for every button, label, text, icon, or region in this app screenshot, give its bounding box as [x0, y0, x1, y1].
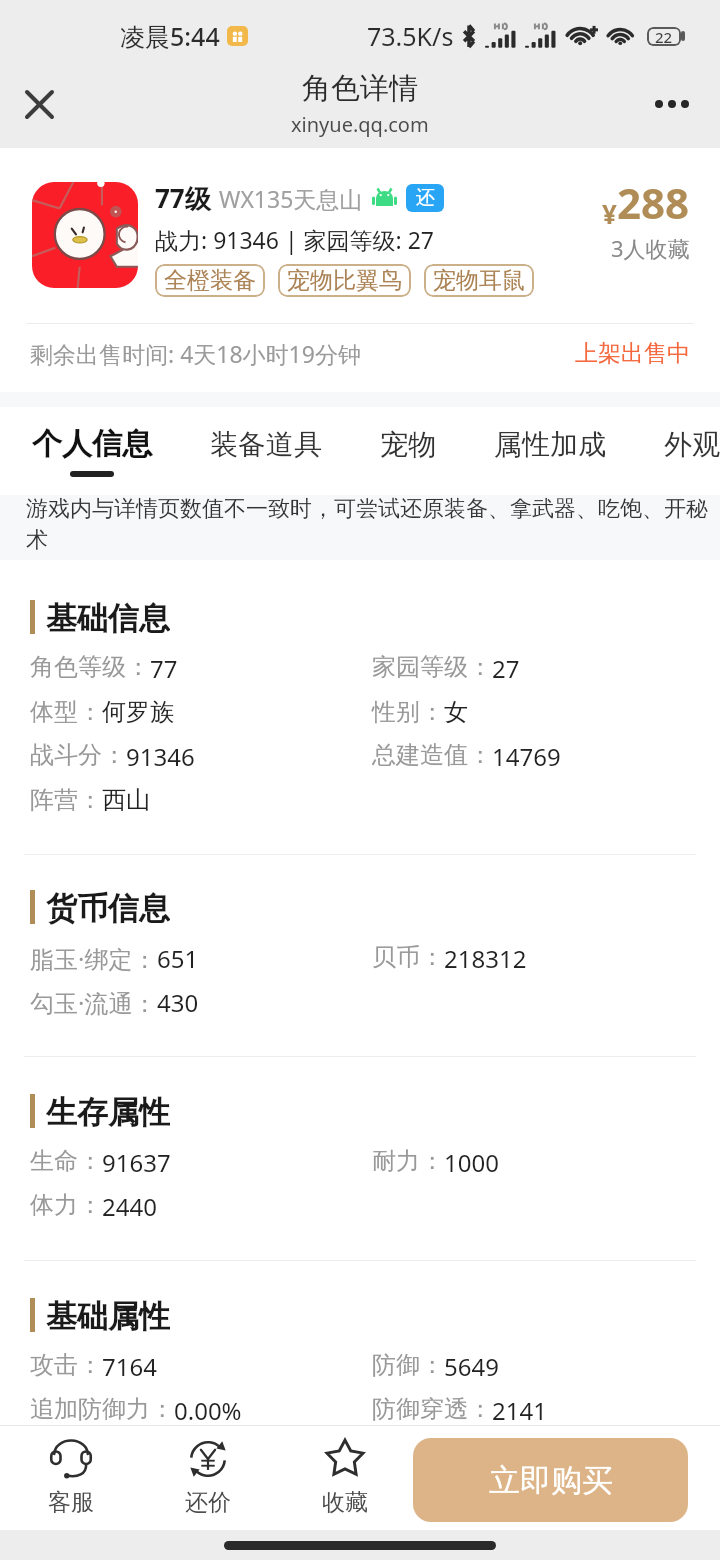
- button[interactable]: 装备道具: [210, 427, 322, 476]
- staticText: 角色等级：: [30, 652, 150, 682]
- button[interactable]: More options: [644, 76, 700, 132]
- staticText: 宠物比翼鸟: [287, 266, 402, 295]
- staticText: 还价: [185, 1488, 231, 1517]
- button[interactable]: 还价: [139, 1438, 276, 1517]
- staticText: 基础属性: [46, 1297, 170, 1333]
- staticText: 91637: [102, 1146, 171, 1179]
- staticText: 个人信息: [32, 425, 152, 463]
- button[interactable]: 立即购买: [413, 1438, 688, 1522]
- staticText: ¥: [602, 196, 617, 231]
- button[interactable]: 收藏: [276, 1438, 413, 1517]
- staticText: 贝币：: [372, 942, 444, 972]
- staticText: 2440: [102, 1190, 157, 1223]
- staticText: 凌晨5:44: [120, 19, 220, 53]
- staticText: 剩余出售时间: 4天18小时19分钟: [30, 338, 361, 369]
- staticText: 3人收藏: [611, 233, 690, 263]
- staticText: 全橙装备: [164, 266, 256, 295]
- button[interactable]: 宠物耳鼠: [433, 264, 525, 297]
- staticText: 14769: [492, 740, 561, 773]
- staticText: 总建造值：: [372, 740, 492, 770]
- staticText: 73.5K/s: [367, 19, 454, 53]
- staticText: 5649: [444, 1350, 499, 1383]
- staticText: 何罗族: [102, 697, 174, 727]
- staticText: 27: [492, 652, 520, 685]
- staticText: 攻击：: [30, 1350, 102, 1380]
- staticText: 288: [617, 174, 690, 231]
- staticText: 218312: [444, 942, 527, 975]
- staticText: 角色详情: [302, 70, 418, 107]
- staticText: 防御：: [372, 1350, 444, 1380]
- staticText: 西山: [102, 785, 150, 815]
- staticText: 体力：: [30, 1190, 102, 1220]
- staticText: 651: [157, 942, 199, 975]
- staticText: 77级: [155, 180, 211, 216]
- staticText: 战力: 91346 | 家园等级: 27: [155, 224, 435, 255]
- staticText: 生命：: [30, 1146, 102, 1176]
- staticText: 收藏: [322, 1488, 368, 1517]
- staticText: 外观: [664, 427, 720, 462]
- staticText: 脂玉·绑定：: [30, 942, 157, 975]
- staticText: 阵营：: [30, 785, 102, 815]
- staticText: 基础信息: [46, 599, 170, 635]
- button[interactable]: 全橙装备: [164, 264, 256, 297]
- staticText: 货币信息: [46, 889, 170, 925]
- staticText: 防御穿透：: [372, 1394, 492, 1424]
- staticText: 91346: [126, 740, 195, 773]
- staticText: xinyue.qq.com: [291, 111, 429, 138]
- staticText: 宠物耳鼠: [433, 266, 525, 295]
- button[interactable]: 宠物比翼鸟: [287, 264, 402, 297]
- staticText: 0.00%: [174, 1394, 242, 1427]
- button[interactable]: 属性加成: [494, 427, 606, 476]
- button[interactable]: 客服: [2, 1438, 139, 1517]
- staticText: 耐力：: [372, 1146, 444, 1176]
- staticText: 上架出售中: [575, 339, 690, 368]
- staticText: 1000: [444, 1146, 499, 1179]
- staticText: 家园等级：: [372, 652, 492, 682]
- staticText: 2141: [492, 1394, 547, 1427]
- staticText: 追加防御力：: [30, 1394, 174, 1424]
- staticText: 游戏内与详情页数值不一致时，可尝试还原装备、拿武器、吃饱、开秘术: [26, 495, 710, 554]
- staticText: 客服: [48, 1488, 94, 1517]
- staticText: 430: [157, 986, 199, 1019]
- staticText: 女: [444, 697, 468, 727]
- staticText: 勾玉·流通：: [30, 986, 157, 1019]
- staticText: WX135天息山: [219, 183, 363, 214]
- staticText: 宠物: [380, 427, 436, 462]
- button[interactable]: 个人信息: [32, 425, 152, 477]
- staticText: 战斗分：: [30, 740, 126, 770]
- staticText: 77: [150, 652, 178, 685]
- button[interactable]: Close: [11, 76, 67, 132]
- staticText: 生存属性: [46, 1093, 170, 1129]
- staticText: 体型：: [30, 697, 102, 727]
- button[interactable]: 宠物: [380, 427, 436, 476]
- staticText: 还: [416, 186, 435, 210]
- staticText: 性别：: [372, 697, 444, 727]
- staticText: 7164: [102, 1350, 157, 1383]
- button[interactable]: 外观: [664, 427, 720, 476]
- staticText: 属性加成: [494, 427, 606, 462]
- staticText: 装备道具: [210, 427, 322, 462]
- staticText: 立即购买: [489, 1461, 613, 1500]
- staticText: 22: [655, 27, 673, 46]
